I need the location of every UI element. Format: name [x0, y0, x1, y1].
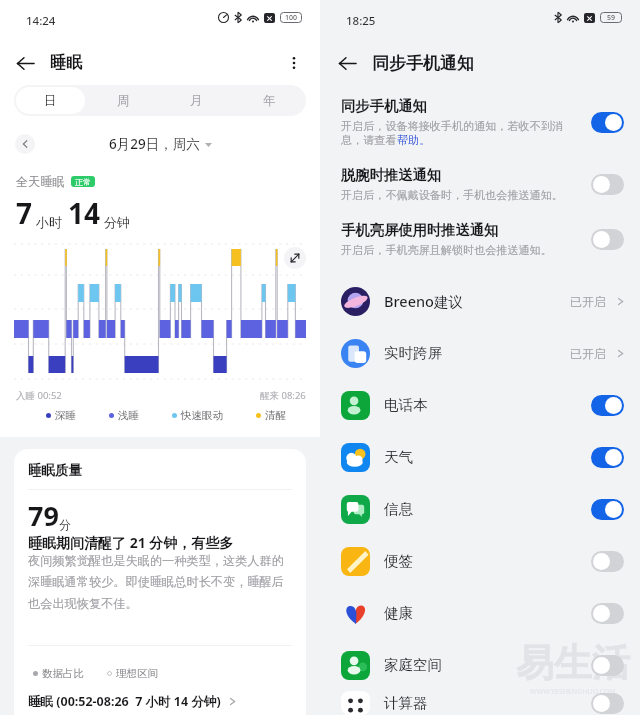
- button[interactable]: 睡眠 (00:52-08:26 7 小时 14 分钟): [28, 693, 236, 710]
- button[interactable]: Breeno建议: [341, 275, 624, 327]
- staticText: 入睡 00:52: [16, 389, 62, 402]
- staticText: 睡眠期间清醒了 21 分钟，有些多: [28, 533, 234, 552]
- button[interactable]: 家庭空间: [341, 639, 624, 691]
- staticText: 正常: [75, 177, 91, 187]
- button[interactable]: 返回: [10, 48, 40, 78]
- staticText: 醒来 08:26: [260, 389, 306, 402]
- button[interactable]: 前一天: [15, 134, 35, 154]
- staticText: 理想区间: [116, 667, 158, 680]
- staticText: 浅睡: [118, 409, 139, 422]
- staticText: 计算器: [384, 694, 428, 712]
- button[interactable]: 年: [235, 87, 304, 114]
- staticText: 月: [190, 93, 203, 109]
- staticText: 脱腕时推送通知: [341, 166, 442, 184]
- staticText: 易生活: [516, 639, 630, 687]
- staticText: 电话本: [384, 396, 428, 414]
- staticText: 快速眼动: [181, 409, 223, 422]
- staticText: 日: [44, 93, 57, 109]
- staticText: 79: [28, 497, 59, 534]
- staticText: 开启后，不佩戴设备时，手机也会推送通知。: [341, 188, 563, 202]
- staticText: 睡眠 (00:52-08:26 7 小时 14 分钟): [28, 693, 221, 710]
- staticText: 分钟: [104, 214, 130, 230]
- staticText: 实时跨屏: [384, 344, 442, 362]
- staticText: 18:25: [346, 13, 376, 29]
- staticText: 已开启: [570, 346, 606, 361]
- button[interactable]: 已开启: [591, 112, 624, 133]
- staticText: 深睡: [55, 409, 76, 422]
- button[interactable]: 日: [16, 87, 85, 114]
- staticText: 健康: [384, 604, 413, 622]
- button[interactable]: 信息: [341, 483, 624, 535]
- button[interactable]: 电话本: [341, 379, 624, 431]
- button[interactable]: 已关闭: [591, 174, 624, 195]
- staticText: 睡眠: [50, 53, 82, 73]
- staticText: 7: [16, 194, 33, 232]
- staticText: 59: [607, 13, 616, 23]
- button[interactable]: 已开启: [591, 499, 624, 520]
- button[interactable]: 已开启: [591, 395, 624, 416]
- staticText: 分: [59, 517, 71, 532]
- button[interactable]: 全屏: [284, 247, 306, 269]
- staticText: 开启后，设备将接收手机的通知，若收不到消: [341, 119, 563, 133]
- button[interactable]: 已开启: [591, 447, 624, 468]
- staticText: 同步手机通知: [341, 97, 427, 115]
- staticText: 已开启: [570, 294, 606, 309]
- staticText: 年: [263, 93, 276, 109]
- button[interactable]: 已关闭: [591, 655, 624, 676]
- button[interactable]: 已关闭: [591, 229, 624, 250]
- staticText: 数据占比: [42, 667, 84, 680]
- staticText: 天气: [384, 448, 413, 466]
- staticText: 100: [285, 13, 298, 23]
- button[interactable]: 已关闭: [591, 551, 624, 572]
- button[interactable]: 6月29日，周六: [109, 135, 212, 153]
- staticText: WWW.YESHENGHUO.COM: [530, 687, 616, 697]
- staticText: 周: [117, 93, 130, 109]
- staticText: 手机亮屏使用时推送通知: [341, 221, 499, 239]
- button[interactable]: 更多: [280, 49, 308, 77]
- staticText: 14:24: [26, 13, 56, 29]
- staticText: 信息: [384, 500, 413, 518]
- button[interactable]: 已关闭: [591, 603, 624, 624]
- button[interactable]: 实时跨屏: [341, 327, 624, 379]
- button[interactable]: 周: [89, 87, 158, 114]
- button[interactable]: 健康: [341, 587, 624, 639]
- staticText: 清醒: [265, 409, 286, 422]
- button[interactable]: 脱腕时推送通知: [341, 166, 624, 202]
- button[interactable]: 手机亮屏使用时推送通知: [341, 221, 624, 257]
- staticText: 6月29日，周六: [109, 135, 200, 153]
- staticText: 开启后，手机亮屏且解锁时也会推送通知。: [341, 243, 552, 257]
- staticText: 同步手机通知: [372, 53, 474, 74]
- button[interactable]: 月: [162, 87, 231, 114]
- staticText: 便签: [384, 552, 413, 570]
- button[interactable]: 返回: [332, 48, 362, 78]
- staticText: 息，请查看: [341, 133, 397, 147]
- button[interactable]: 同步手机通知: [341, 97, 624, 147]
- button[interactable]: 便签: [341, 535, 624, 587]
- staticText: 小时: [36, 214, 62, 230]
- staticText: 全天睡眠: [16, 174, 65, 189]
- staticText: 夜间频繁觉醒也是失眠的一种类型，这类人群的深睡眠通常较少。即使睡眠总时长不变，睡…: [28, 553, 290, 612]
- staticText: 14: [68, 194, 101, 232]
- staticText: Breeno建议: [384, 291, 463, 311]
- button[interactable]: 已关闭: [591, 693, 624, 714]
- button[interactable]: 计算器: [341, 691, 624, 715]
- staticText: 帮助。: [397, 133, 431, 147]
- staticText: 睡眠质量: [28, 462, 82, 479]
- staticText: 家庭空间: [384, 656, 442, 674]
- button[interactable]: 天气: [341, 431, 624, 483]
